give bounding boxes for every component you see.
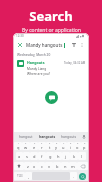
button[interactable]: . (70, 172, 77, 180)
staticText: , (28, 174, 30, 179)
staticText: Mandy Liang (27, 67, 47, 71)
button[interactable]: v (45, 162, 53, 170)
button[interactable]: a (16, 152, 23, 160)
staticText: e (33, 145, 36, 150)
staticText: d (33, 154, 36, 159)
button[interactable]: m (69, 162, 77, 170)
staticText: 8 (70, 142, 72, 145)
button[interactable]: 1 (14, 142, 22, 150)
button[interactable]: h (54, 152, 62, 160)
staticText: Search (29, 7, 73, 25)
staticText: z (27, 164, 29, 169)
staticText: 3 (34, 142, 36, 145)
staticText: i (70, 145, 72, 150)
staticText: Mandy hangouts (26, 42, 63, 48)
button[interactable]: z (24, 162, 31, 170)
staticText: ?123 (17, 174, 23, 178)
button[interactable]: 9 (74, 142, 81, 150)
button[interactable]: hangouts (58, 132, 80, 141)
button[interactable]: Voice input (80, 132, 87, 141)
staticText: x (33, 164, 36, 169)
button[interactable]: Search (79, 173, 86, 180)
staticText: s (26, 154, 28, 159)
button[interactable]: 3 (30, 142, 38, 150)
staticText: 2 (25, 142, 27, 145)
button[interactable]: hangout (15, 132, 36, 141)
button[interactable]: l (78, 152, 86, 160)
staticText: 5 (49, 142, 51, 145)
button[interactable]: ?123 (14, 172, 25, 180)
button[interactable]: Filter (70, 41, 78, 49)
button[interactable]: 5 (46, 142, 53, 150)
button[interactable]: j (62, 152, 70, 160)
staticText: hangouts (61, 134, 77, 139)
button[interactable]: s (23, 152, 30, 160)
staticText: By content or application (22, 27, 81, 34)
staticText: 1 (18, 142, 20, 145)
staticText: j (65, 154, 67, 159)
button[interactable]: f (38, 152, 46, 160)
staticText: c (41, 164, 43, 169)
staticText: f (41, 154, 43, 159)
button[interactable]: n (61, 162, 69, 170)
staticText: y (55, 145, 58, 150)
staticText: 12:30 (16, 34, 24, 38)
staticText: hangouts (39, 134, 56, 139)
staticText: 9 (77, 142, 79, 145)
staticText: Hangouts (27, 60, 45, 65)
button[interactable]: x (31, 162, 38, 170)
staticText: t (49, 145, 51, 150)
button[interactable]: Mandy hangouts (26, 42, 70, 48)
staticText: Today, 04:32 AM (64, 61, 86, 65)
staticText: n (64, 164, 67, 169)
button[interactable]: New conversation (45, 91, 58, 104)
staticText: b (56, 164, 59, 169)
button[interactable]: 8 (67, 142, 74, 150)
staticText: w (24, 145, 28, 150)
staticText: 6 (56, 142, 58, 145)
staticText: hangout (19, 134, 33, 139)
staticText: m (71, 164, 75, 169)
staticText: Wednesday, March 20 (17, 53, 51, 57)
staticText: k (73, 154, 76, 159)
button[interactable]: 6 (53, 142, 60, 150)
button[interactable]: Close search (16, 41, 24, 49)
staticText: v (48, 164, 51, 169)
staticText: r (41, 145, 43, 150)
staticText: h (57, 154, 60, 159)
button[interactable]: 4 (38, 142, 46, 150)
button[interactable]: hangouts (36, 132, 58, 141)
button[interactable]: 7 (60, 142, 67, 150)
button[interactable]: Hangouts (13, 57, 89, 76)
staticText: 0 (84, 142, 86, 145)
button[interactable]: More options (78, 41, 86, 49)
staticText: p (83, 145, 86, 150)
button[interactable]: Backspace (77, 162, 88, 170)
button[interactable]: g (46, 152, 54, 160)
button[interactable]: 0 (81, 142, 88, 150)
staticText: q (17, 145, 20, 150)
staticText: g (49, 154, 52, 159)
button[interactable]: c (38, 162, 45, 170)
staticText: a (18, 154, 21, 159)
button[interactable]: , (25, 172, 32, 180)
staticText: 4 (41, 142, 43, 145)
button[interactable]: Shift (14, 162, 24, 170)
staticText: u (62, 145, 65, 150)
button[interactable]: k (70, 152, 78, 160)
staticText: l (81, 154, 83, 159)
staticText: 7 (63, 142, 65, 145)
staticText: o (76, 145, 79, 150)
button[interactable]: 2 (22, 142, 30, 150)
button[interactable]: b (53, 162, 61, 170)
button[interactable]: d (30, 152, 38, 160)
staticText: . (73, 174, 75, 179)
staticText: Where are you? (27, 72, 51, 76)
